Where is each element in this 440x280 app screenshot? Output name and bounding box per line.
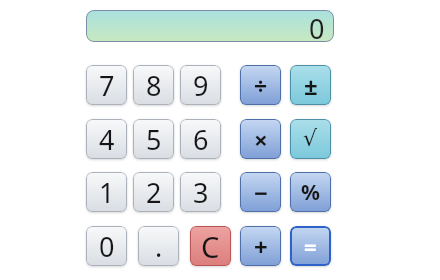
button[interactable]: ÷	[240, 65, 281, 105]
staticText: ÷	[254, 70, 268, 101]
button[interactable]: =	[290, 226, 331, 266]
staticText: =	[304, 231, 317, 261]
button[interactable]: %	[290, 172, 331, 212]
staticText: 4	[99, 121, 115, 158]
button[interactable]: −	[240, 172, 281, 212]
button[interactable]: 4	[86, 119, 127, 159]
staticText: ×	[254, 123, 268, 156]
button[interactable]: √	[290, 119, 331, 159]
button[interactable]: ×	[240, 119, 281, 159]
staticText: ±	[304, 69, 318, 102]
staticText: 1	[99, 174, 115, 211]
staticText: C	[201, 227, 220, 266]
staticText: 8	[146, 67, 162, 104]
button[interactable]: +	[240, 226, 281, 266]
button[interactable]: 6	[180, 119, 221, 159]
staticText: 0	[309, 10, 325, 42]
staticText: −	[254, 176, 268, 209]
button[interactable]: 8	[133, 65, 174, 105]
staticText: 3	[193, 174, 209, 211]
button[interactable]: .	[138, 226, 179, 266]
staticText: +	[254, 230, 268, 263]
button[interactable]: ±	[290, 65, 331, 105]
button[interactable]: 0	[86, 226, 127, 266]
staticText: 0	[99, 228, 115, 265]
staticText: 9	[193, 67, 209, 104]
button[interactable]: 3	[180, 172, 221, 212]
staticText: √	[303, 126, 318, 152]
button[interactable]: C	[190, 226, 231, 266]
staticText: 2	[146, 174, 162, 211]
staticText: %	[301, 178, 320, 207]
staticText: 6	[193, 121, 209, 158]
button[interactable]: 7	[86, 65, 127, 105]
staticText: 7	[99, 67, 115, 104]
button[interactable]: 5	[133, 119, 174, 159]
staticText: .	[155, 228, 163, 265]
button[interactable]: 1	[86, 172, 127, 212]
button[interactable]: 2	[133, 172, 174, 212]
button[interactable]: 9	[180, 65, 221, 105]
staticText: 5	[146, 121, 162, 158]
